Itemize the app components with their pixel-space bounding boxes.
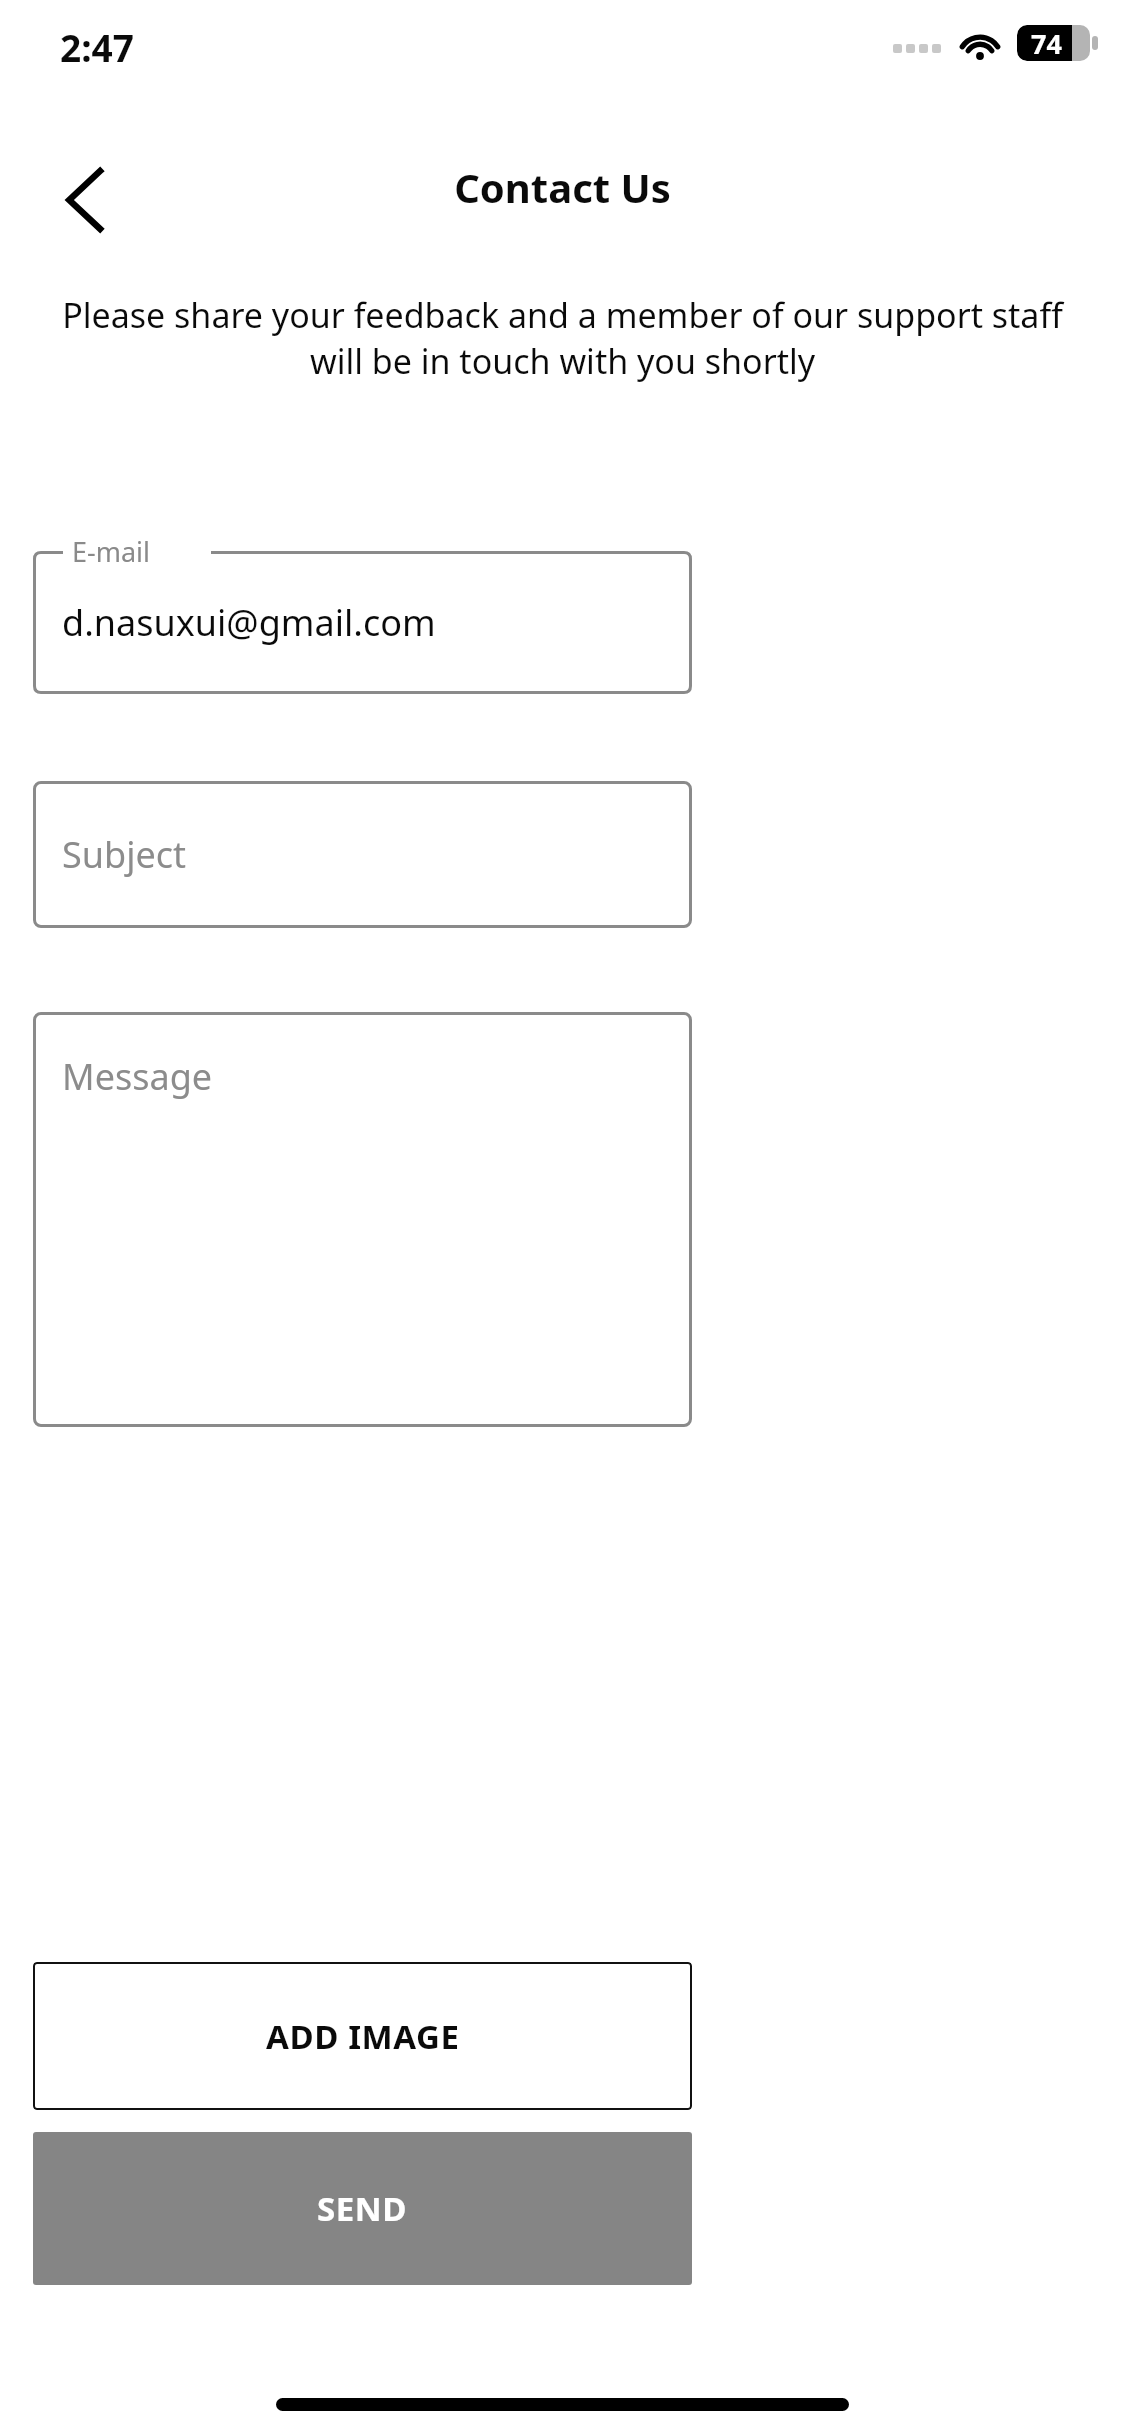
- button[interactable]: Message: [33, 1012, 692, 1427]
- staticText: ADD IMAGE: [266, 2014, 460, 2059]
- staticText: Please share your feedback and a member …: [44, 292, 1081, 384]
- staticText: Subject: [62, 830, 187, 879]
- button[interactable]: ADD IMAGE: [33, 1962, 692, 2110]
- button[interactable]: Back: [36, 150, 136, 250]
- staticText: Message: [62, 1052, 213, 1101]
- staticText: d.nasuxui@gmail.com: [62, 598, 436, 647]
- staticText: SEND: [317, 2186, 408, 2231]
- button[interactable]: SEND: [33, 2132, 692, 2285]
- staticText: Contact Us: [454, 160, 671, 214]
- staticText: 2:47: [60, 22, 134, 72]
- staticText: E-mail: [72, 533, 151, 570]
- button[interactable]: E-mail: [33, 551, 692, 694]
- button[interactable]: Subject: [33, 781, 692, 928]
- staticText: 74: [1031, 25, 1062, 61]
